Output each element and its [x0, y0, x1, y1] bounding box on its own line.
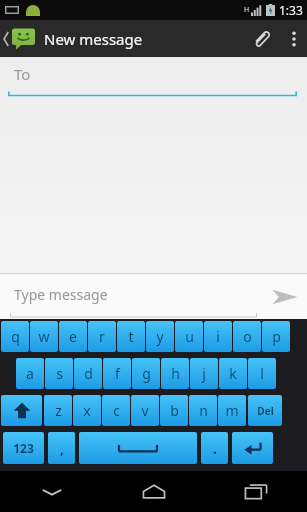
staticText: o [243, 327, 252, 346]
button[interactable]: t [117, 321, 145, 352]
button[interactable]: Send [263, 275, 307, 319]
staticText: 123 [13, 440, 34, 456]
button[interactable]: Home [103, 471, 205, 512]
staticText: x [83, 401, 91, 420]
staticText: f [115, 364, 120, 383]
button[interactable]: n [189, 395, 217, 426]
staticText: l [260, 364, 264, 383]
staticText: e [69, 327, 77, 346]
button[interactable]: r [88, 321, 116, 352]
staticText: g [142, 364, 151, 383]
button[interactable]: x [73, 395, 101, 426]
staticText: To [14, 64, 31, 84]
staticText: z [55, 401, 62, 420]
staticText: q [11, 327, 20, 346]
button[interactable]: . [201, 432, 228, 464]
staticText: s [56, 364, 63, 383]
staticText: H [244, 5, 250, 15]
button[interactable]: h [161, 358, 189, 389]
staticText: w [38, 327, 50, 346]
button[interactable]: j [190, 358, 218, 389]
button[interactable]: z [44, 395, 72, 426]
staticText: t [128, 327, 134, 346]
staticText: Del [257, 404, 274, 418]
staticText: j [202, 364, 206, 383]
staticText: b [170, 401, 179, 420]
button[interactable]: Hide keyboard [0, 471, 103, 512]
button[interactable]: m [218, 395, 246, 426]
staticText: Type message [14, 285, 108, 304]
staticText: a [26, 364, 34, 383]
button[interactable]: Enter [232, 432, 273, 464]
staticText: c [113, 401, 120, 420]
button[interactable]: v [131, 395, 159, 426]
staticText: p [272, 327, 281, 346]
button[interactable]: , [48, 432, 75, 464]
button[interactable]: Navigate up [0, 20, 37, 57]
button[interactable]: q [1, 321, 29, 352]
button[interactable]: Space [79, 432, 197, 464]
staticText: n [199, 401, 208, 420]
button[interactable]: To [0, 57, 307, 97]
button[interactable]: s [45, 358, 73, 389]
button[interactable]: f [103, 358, 131, 389]
button[interactable]: Recent apps [205, 471, 307, 512]
button[interactable]: d [74, 358, 102, 389]
button[interactable]: p [262, 321, 290, 352]
button[interactable]: o [233, 321, 261, 352]
button[interactable]: u [175, 321, 203, 352]
staticText: d [84, 364, 93, 383]
staticText: New message [44, 29, 143, 49]
staticText: k [229, 364, 237, 383]
staticText: . [213, 439, 217, 458]
button[interactable]: b [160, 395, 188, 426]
staticText: v [141, 401, 149, 420]
button[interactable]: 123 [3, 432, 44, 464]
staticText: h [171, 364, 180, 383]
button[interactable]: Shift [1, 395, 42, 426]
button[interactable]: Attach [241, 20, 281, 57]
button[interactable]: a [16, 358, 44, 389]
staticText: i [216, 327, 220, 346]
button[interactable]: c [102, 395, 130, 426]
staticText: 1:33 [279, 2, 303, 18]
button[interactable]: Type message [10, 275, 257, 319]
button[interactable]: Del [248, 395, 282, 426]
staticText: u [185, 327, 194, 346]
button[interactable]: y [146, 321, 174, 352]
staticText: r [99, 327, 105, 346]
button[interactable]: l [248, 358, 276, 389]
button[interactable]: w [30, 321, 58, 352]
button[interactable]: More options [281, 20, 307, 57]
button[interactable]: k [219, 358, 247, 389]
staticText: y [156, 327, 164, 346]
button[interactable]: g [132, 358, 160, 389]
button[interactable]: e [59, 321, 87, 352]
staticText: , [60, 439, 64, 458]
button[interactable]: i [204, 321, 232, 352]
staticText: m [225, 401, 239, 420]
